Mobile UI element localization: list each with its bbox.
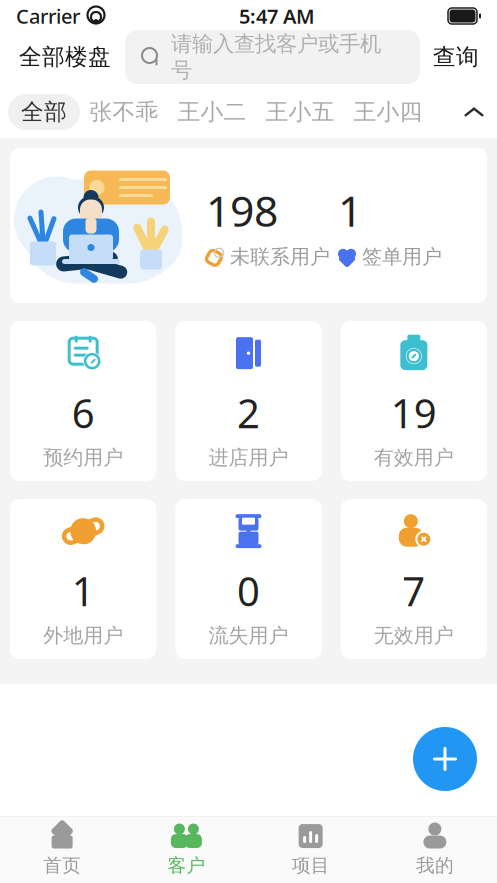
staticText: 外地用户 bbox=[43, 623, 123, 648]
staticText: 流失用户 bbox=[208, 623, 288, 648]
button[interactable]: 张不乖 bbox=[80, 94, 168, 130]
button[interactable]: 7 bbox=[341, 499, 487, 659]
staticText: 王小二 bbox=[177, 98, 246, 126]
button[interactable]: 我的 bbox=[373, 819, 497, 881]
button[interactable]: 客户 bbox=[124, 819, 248, 881]
staticText: 0 bbox=[237, 564, 260, 617]
staticText: 全部 bbox=[21, 98, 67, 126]
button[interactable]: 添加客户 bbox=[413, 727, 477, 791]
staticText: Carrier bbox=[16, 3, 80, 29]
staticText: 1 bbox=[338, 182, 362, 239]
staticText: 项目 bbox=[292, 854, 330, 877]
staticText: 查询 bbox=[433, 43, 479, 71]
button[interactable]: 收起 bbox=[451, 90, 497, 134]
button[interactable]: 19 bbox=[341, 321, 487, 481]
staticText: 6 bbox=[72, 386, 95, 439]
staticText: 全部楼盘 bbox=[19, 43, 111, 71]
button[interactable]: 全部楼盘 bbox=[5, 30, 125, 84]
button[interactable]: 0 bbox=[175, 499, 322, 659]
button[interactable]: 查询 bbox=[420, 30, 492, 84]
staticText: 客户 bbox=[167, 854, 205, 877]
staticText: 1 bbox=[72, 564, 95, 617]
staticText: 签单用户 bbox=[362, 244, 442, 269]
staticText: 19 bbox=[391, 386, 437, 439]
staticText: 首页 bbox=[43, 854, 81, 877]
button[interactable]: 项目 bbox=[248, 819, 373, 881]
button[interactable]: 请输入查找客户或手机号 bbox=[125, 30, 420, 84]
staticText: 有效用户 bbox=[374, 445, 454, 470]
staticText: 我的 bbox=[416, 854, 454, 877]
button[interactable]: 王小五 bbox=[256, 94, 344, 130]
staticText: 未联系用户 bbox=[230, 244, 330, 269]
staticText: 预约用户 bbox=[43, 445, 123, 470]
staticText: 张不乖 bbox=[89, 98, 158, 126]
staticText: 王小五 bbox=[265, 98, 334, 126]
button[interactable]: 王小四 bbox=[344, 94, 432, 130]
button[interactable]: 6 bbox=[10, 321, 156, 481]
staticText: 2 bbox=[237, 386, 260, 439]
staticText: 王小四 bbox=[353, 98, 422, 126]
staticText: 进店用户 bbox=[208, 445, 288, 470]
staticText: 198 bbox=[206, 182, 278, 239]
button[interactable]: 1 bbox=[10, 499, 156, 659]
staticText: 请输入查找客户或手机号 bbox=[171, 31, 381, 83]
button[interactable]: 2 bbox=[175, 321, 322, 481]
staticText: 无效用户 bbox=[374, 623, 454, 648]
staticText: 5:47 AM bbox=[239, 3, 315, 29]
button[interactable]: 王小二 bbox=[168, 94, 256, 130]
button[interactable]: 首页 bbox=[0, 819, 124, 881]
button[interactable]: 全部 bbox=[8, 94, 80, 130]
staticText: 7 bbox=[402, 564, 425, 617]
